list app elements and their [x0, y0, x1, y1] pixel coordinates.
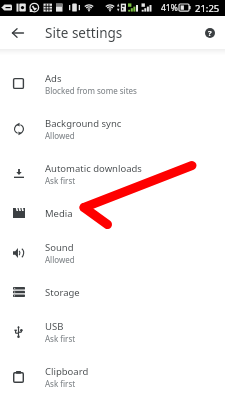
staticText: 41%: [161, 2, 178, 14]
staticText: 21:25: [195, 2, 220, 15]
staticText: Sound: [45, 241, 74, 254]
button[interactable]: Help: [194, 16, 225, 49]
staticText: Ask first: [45, 333, 76, 344]
button[interactable]: Sound: [0, 230, 225, 275]
staticText: Ads: [45, 72, 62, 85]
staticText: Clipboard: [45, 365, 89, 378]
staticText: Blocked from some sites: [45, 85, 137, 96]
staticText: Background sync: [45, 117, 122, 130]
staticText: Ask first: [45, 175, 76, 186]
staticText: Allowed: [45, 130, 75, 141]
staticText: USB: [45, 320, 64, 333]
staticText: Automatic downloads: [45, 162, 142, 175]
staticText: Storage: [45, 286, 80, 299]
staticText: Site settings: [45, 24, 123, 42]
button[interactable]: USB: [0, 309, 225, 354]
staticText: ?: [208, 28, 212, 38]
button[interactable]: Storage: [0, 275, 225, 309]
staticText: Media: [45, 207, 73, 220]
staticText: Allowed: [45, 254, 75, 265]
button[interactable]: Back: [0, 16, 36, 49]
staticText: Ask first: [45, 378, 76, 389]
button[interactable]: Media: [0, 196, 225, 230]
button[interactable]: Background sync: [0, 106, 225, 151]
button[interactable]: Automatic downloads: [0, 151, 225, 196]
button[interactable]: Clipboard: [0, 354, 225, 399]
button[interactable]: Ads: [0, 61, 225, 106]
